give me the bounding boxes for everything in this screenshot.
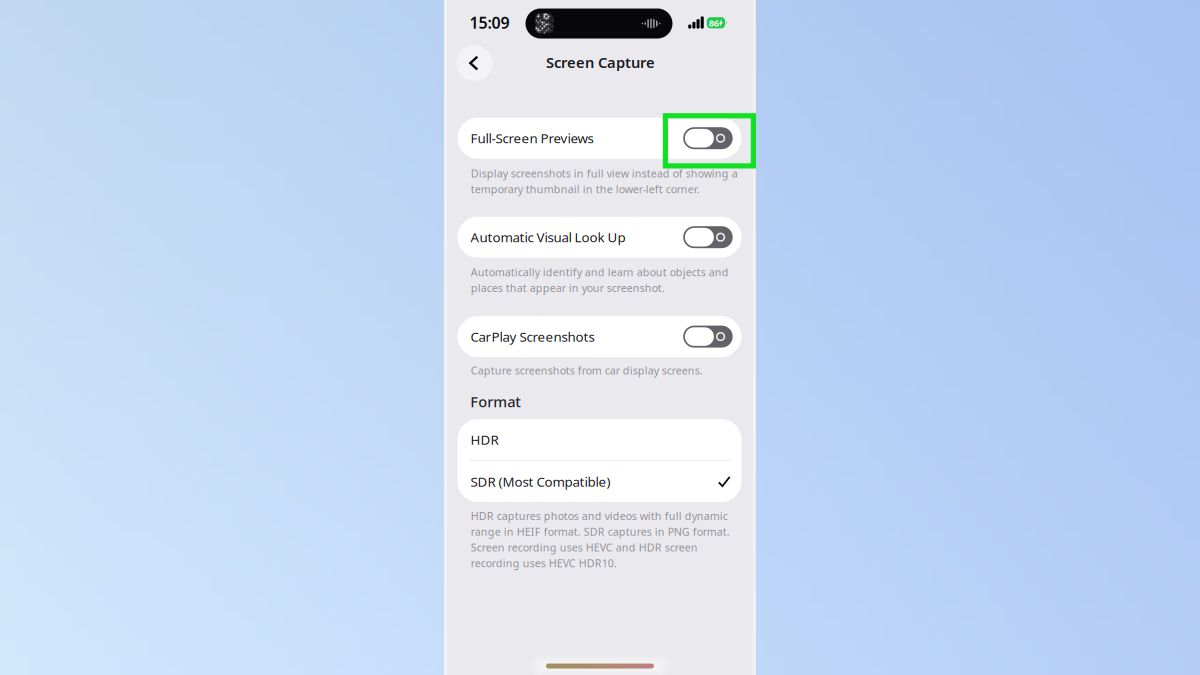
button[interactable]: Back (456, 45, 492, 81)
staticText: HDR captures photos and videos with full… (471, 509, 730, 570)
staticText: Full-Screen Previews (470, 129, 593, 147)
staticText: Capture screenshots from car display scr… (471, 363, 703, 377)
staticText: SDR (Most Compatible) (470, 473, 610, 490)
button[interactable]: SDR (Most Compatible) (457, 461, 741, 502)
staticText: CarPlay Screenshots (470, 328, 594, 345)
button[interactable]: Automatic Visual Look Up (457, 217, 741, 258)
button[interactable]: Full-Screen Previews (457, 118, 741, 159)
staticText: Automatically identify and learn about o… (471, 265, 729, 295)
staticText: Format (470, 392, 521, 411)
staticText: 15:09 (469, 12, 509, 33)
staticText: 86 (709, 17, 719, 29)
staticText: HDR (470, 431, 498, 448)
staticText: Automatic Visual Look Up (470, 228, 625, 246)
button[interactable]: CarPlay Screenshots (457, 316, 741, 357)
button[interactable]: HDR (457, 419, 741, 460)
staticText: Display screenshots in full view instead… (471, 166, 738, 196)
staticText: Screen Capture (546, 52, 655, 72)
